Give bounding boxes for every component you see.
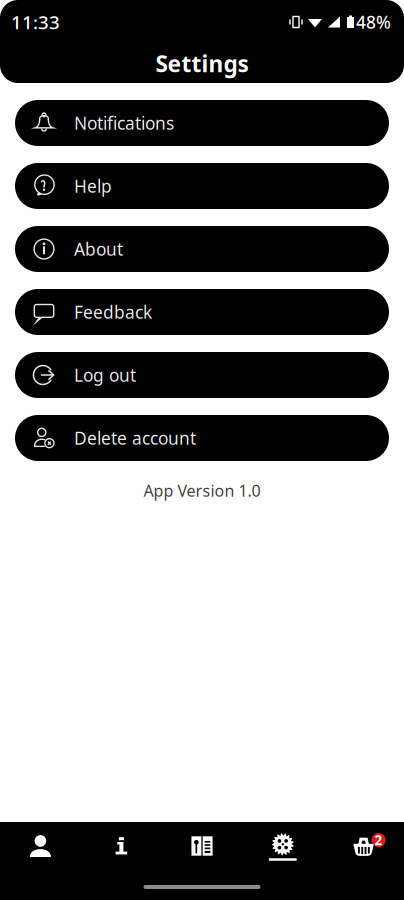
- staticText: Delete account: [74, 426, 196, 449]
- staticText: 48%: [356, 10, 391, 33]
- staticText: Settings: [155, 48, 248, 78]
- button[interactable]: Log out: [15, 352, 389, 398]
- button[interactable]: Help: [15, 163, 389, 209]
- staticText: Feedback: [74, 300, 152, 323]
- button[interactable]: About: [15, 226, 389, 272]
- staticText: Notifications: [74, 111, 174, 134]
- staticText: App Version 1.0: [143, 480, 260, 501]
- staticText: Help: [74, 174, 112, 197]
- staticText: 11:33: [11, 10, 60, 34]
- staticText: About: [74, 237, 123, 260]
- staticText: 2: [375, 831, 383, 849]
- button[interactable]: Profile: [0, 822, 81, 870]
- button[interactable]: Notifications: [15, 100, 389, 146]
- button[interactable]: Feedback: [15, 289, 389, 335]
- button[interactable]: Info: [81, 822, 162, 870]
- button[interactable]: Delete account: [15, 415, 389, 461]
- button[interactable]: Settings: [242, 822, 323, 870]
- staticText: Log out: [74, 363, 136, 386]
- button[interactable]: Menu: [162, 822, 242, 870]
- button[interactable]: Cart, 2 items: [323, 822, 404, 870]
